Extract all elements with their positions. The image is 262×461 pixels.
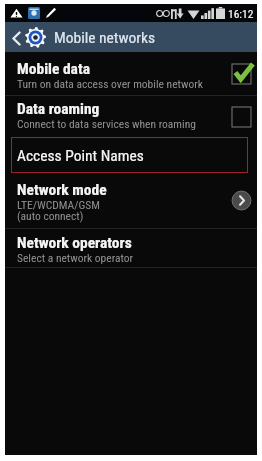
staticText: 16:12 [228,7,254,20]
button[interactable]: Mobile data [5,52,257,95]
staticText: Network operators [17,234,132,252]
button[interactable]: Access Point Names [11,137,248,173]
staticText: Connect to data services when roaming [17,117,196,130]
button[interactable]: Data roaming [5,96,257,137]
button[interactable]: Network mode [5,173,257,228]
button[interactable]: More options [231,190,252,211]
staticText: Network mode [17,181,107,199]
other: Back [10,30,21,46]
staticText: LTE/WCDMA/GSM (auto connect) [17,198,100,223]
button[interactable]: Mobile data [232,64,251,84]
staticText: Mobile data [17,60,90,78]
staticText: Access Point Names [17,147,144,165]
staticText: Turn on data access over mobile network [17,77,203,90]
button[interactable]: Back [5,22,257,52]
button[interactable]: Network operators [5,229,257,267]
staticText: Data roaming [17,100,100,118]
staticText: Mobile networks [54,29,156,47]
staticText: Select a network operator [17,251,134,264]
button[interactable]: Data roaming [232,107,251,127]
